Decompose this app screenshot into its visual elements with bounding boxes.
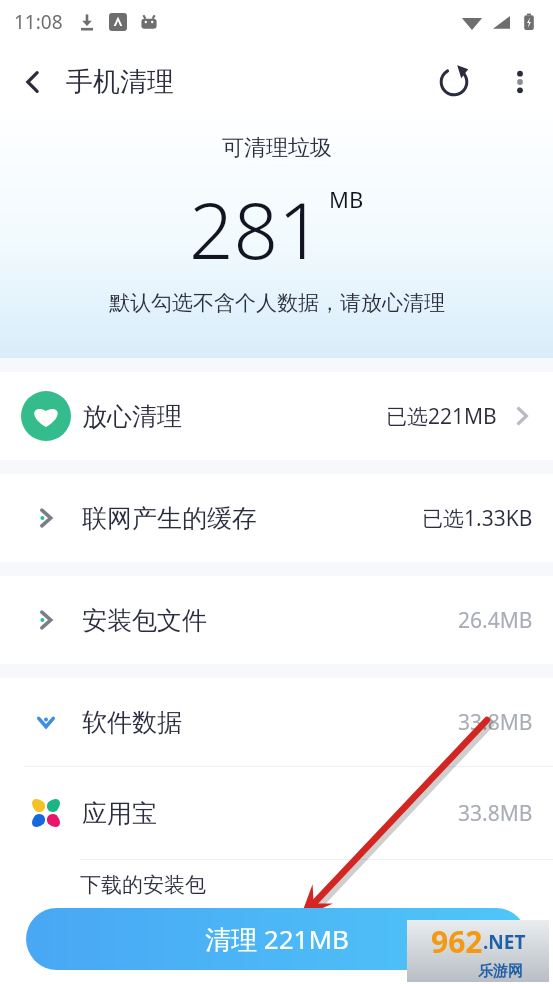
staticText: 安装包文件: [82, 605, 207, 636]
staticText: 乐游网: [478, 962, 523, 981]
staticText: 281: [189, 176, 323, 282]
staticText: 已选221MB: [386, 402, 497, 431]
staticText: 联网产生的缓存: [82, 503, 257, 534]
staticText: MB: [329, 184, 364, 214]
staticText: 962: [431, 921, 483, 962]
staticText: 已选1.33KB: [422, 504, 533, 533]
staticText: 应用宝: [82, 798, 157, 829]
staticText: 26.4MB: [458, 606, 533, 635]
staticText: 11:08: [14, 9, 63, 35]
staticText: .NET: [483, 929, 526, 955]
button[interactable]: Back: [0, 44, 66, 120]
staticText: 放心清理: [82, 401, 182, 432]
staticText: 手机清理: [66, 65, 174, 99]
staticText: 33.8MB: [458, 799, 533, 828]
button[interactable]: 软件数据: [0, 678, 553, 766]
button[interactable]: Refresh: [421, 49, 487, 115]
button[interactable]: More options: [487, 49, 553, 115]
staticText: 清理 221MB: [205, 921, 349, 957]
button[interactable]: 安装包文件: [0, 576, 553, 664]
staticText: 可清理垃圾: [222, 134, 332, 162]
button[interactable]: 联网产生的缓存: [0, 474, 553, 562]
staticText: 下载的安装包: [80, 872, 206, 898]
button[interactable]: 放心清理: [0, 372, 553, 460]
staticText: 33.8MB: [458, 708, 533, 737]
staticText: 默认勾选不含个人数据，请放心清理: [109, 290, 445, 316]
button[interactable]: 清理 221MB: [26, 908, 527, 970]
staticText: 软件数据: [82, 707, 182, 738]
button[interactable]: 应用宝: [0, 767, 553, 859]
